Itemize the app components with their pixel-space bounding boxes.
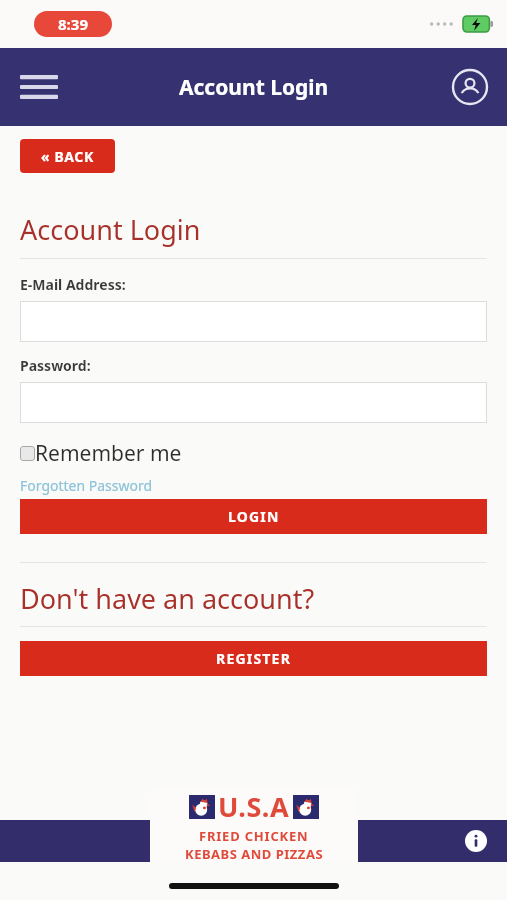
staticText: Account Login [179, 73, 329, 102]
staticText: REGISTER [216, 649, 292, 668]
button[interactable]: REGISTER [20, 641, 487, 676]
button[interactable] [20, 301, 487, 342]
button[interactable]: Menu [14, 65, 64, 109]
staticText: Remember me [35, 439, 182, 468]
staticText: 8:39 [58, 14, 88, 34]
staticText: KEBABS AND PIZZAS [185, 845, 324, 862]
staticText: « BACK [41, 147, 94, 166]
staticText: Password: [20, 356, 91, 375]
button[interactable]: USA Fried Chicken logo [150, 788, 358, 862]
staticText: U.S.A [218, 788, 290, 825]
button[interactable]: LOGIN [20, 499, 487, 534]
button[interactable]: Information [459, 824, 493, 858]
button[interactable]: « BACK [20, 139, 115, 173]
staticText: Forgotten Password [20, 476, 153, 495]
button[interactable]: Remember me [20, 439, 182, 468]
staticText: Account Login [20, 211, 201, 248]
staticText: Don't have an account? [20, 580, 315, 617]
staticText: FRIED CHICKEN [199, 827, 309, 845]
button[interactable] [20, 382, 487, 423]
button[interactable]: Account [447, 64, 493, 110]
staticText: E-Mail Address: [20, 275, 126, 294]
button[interactable]: Forgotten Password [20, 476, 153, 495]
staticText: LOGIN [228, 507, 280, 526]
